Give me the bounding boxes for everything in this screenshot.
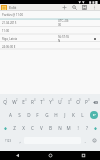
button[interactable]: More options (89, 4, 99, 11)
staticText: E (22, 99, 25, 105)
button[interactable]: X (19, 122, 28, 134)
button[interactable]: J (60, 109, 69, 121)
button[interactable]: ! (73, 122, 82, 134)
staticText: 0 (88, 98, 90, 102)
staticText: X (22, 125, 25, 131)
button[interactable]: Back (0, 151, 34, 160)
staticText: K (72, 112, 75, 118)
button[interactable]: Shift lock (91, 122, 100, 134)
staticText: . (84, 138, 86, 144)
staticText: 1 (6, 98, 8, 102)
staticText: 2 (16, 98, 18, 102)
staticText: Q (3, 99, 7, 105)
staticText: Y (49, 99, 52, 105)
staticText: UTC+03:00 (58, 19, 70, 27)
staticText: 24:06:00 E (2, 45, 16, 49)
button[interactable]: Save (79, 4, 89, 11)
staticText: L (81, 112, 84, 118)
staticText: ?123 (5, 139, 12, 143)
button[interactable]: Search (69, 4, 79, 11)
button[interactable]: W (10, 96, 19, 108)
staticText: M (66, 125, 71, 131)
staticText: S (18, 112, 21, 118)
button[interactable]: K (69, 109, 78, 121)
button[interactable]: P (82, 96, 91, 108)
staticText: 9 (79, 98, 81, 102)
staticText: B (49, 125, 52, 131)
button[interactable]: M (64, 122, 73, 134)
button[interactable]: I (64, 96, 73, 108)
button[interactable]: Riga, Latvia (0, 35, 100, 43)
button[interactable]: ? (82, 122, 91, 134)
button[interactable]: Emoji (89, 135, 100, 146)
button[interactable]: . (81, 135, 89, 146)
staticText: N (58, 125, 62, 131)
button[interactable]: L (78, 109, 87, 121)
button[interactable]: ?123 (0, 135, 16, 146)
staticText: 4 (34, 98, 36, 102)
button[interactable]: , (16, 135, 24, 146)
button[interactable]: E (19, 96, 28, 108)
button[interactable]: A (6, 109, 15, 121)
staticText: ! (77, 125, 79, 131)
staticText: Edit (9, 5, 17, 10)
button[interactable]: Enter (90, 111, 98, 119)
staticText: 11:00 (2, 29, 10, 33)
staticText: 8 (70, 98, 72, 102)
staticText: G (45, 112, 49, 118)
staticText: 3 (25, 98, 27, 102)
button[interactable]: C (28, 122, 37, 134)
button[interactable]: Backspace (91, 96, 100, 108)
staticText: Z (13, 125, 16, 131)
staticText: A (9, 112, 12, 118)
button[interactable]: Z (10, 122, 19, 134)
button[interactable]: Recent apps (67, 151, 100, 160)
staticText: 56:57:55 N (58, 35, 70, 43)
staticText: W (12, 99, 17, 105)
staticText: C (31, 125, 34, 131)
staticText: Pozitīvs @ 11:00 (2, 13, 24, 17)
staticText: V (40, 125, 43, 131)
button[interactable]: V (37, 122, 46, 134)
button[interactable]: Pozitīvs @ 11:00 (0, 11, 100, 19)
staticText: Riga, Latvia (2, 37, 17, 41)
button[interactable]: S (15, 109, 24, 121)
staticText: ? (86, 125, 88, 131)
staticText: , (19, 138, 21, 144)
button[interactable]: 21.04.2015 (0, 19, 100, 27)
button[interactable]: 24:06:00 E (0, 43, 100, 51)
staticText: 6 (52, 98, 54, 102)
button[interactable]: G (42, 109, 51, 121)
staticText: 21.04.2015 (2, 21, 17, 25)
staticText: R (31, 99, 34, 105)
staticText: F (36, 112, 39, 118)
button[interactable]: T (37, 96, 46, 108)
staticText: 5 (43, 98, 45, 102)
staticText: U (58, 99, 62, 105)
button[interactable]: U (55, 96, 64, 108)
button[interactable]: D (24, 109, 33, 121)
staticText: D (27, 112, 31, 118)
button[interactable]: H (51, 109, 60, 121)
button[interactable]: Q (0, 96, 10, 108)
button[interactable]: Home (34, 151, 67, 160)
button[interactable]: O (73, 96, 82, 108)
button[interactable]: F (33, 109, 42, 121)
staticText: P (85, 99, 88, 105)
staticText: J (64, 112, 66, 118)
button[interactable]: R (28, 96, 37, 108)
staticText: T (40, 99, 43, 105)
button[interactable]: Add (59, 4, 69, 11)
staticText: I (68, 99, 70, 105)
staticText: H (54, 112, 58, 118)
staticText: O (76, 99, 80, 105)
button[interactable]: 11:00 (0, 27, 100, 35)
button[interactable]: Y (46, 96, 55, 108)
staticText: 7 (61, 98, 63, 102)
button[interactable]: N (55, 122, 64, 134)
button[interactable]: Shift (0, 122, 10, 134)
button[interactable]: Up (1, 5, 7, 11)
button[interactable]: B (46, 122, 55, 134)
